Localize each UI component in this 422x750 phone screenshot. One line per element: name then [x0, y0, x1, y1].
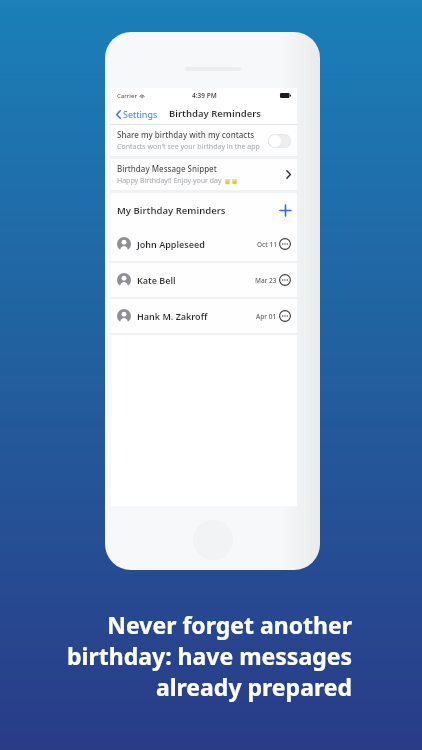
button[interactable]: Hank M. Zakroff	[111, 299, 297, 333]
staticText: Kate Bell	[137, 274, 176, 286]
staticText: already prepared	[155, 671, 352, 702]
button[interactable]: Birthday Message Snippet	[111, 159, 297, 190]
staticText: birthday: have messages	[67, 640, 352, 671]
staticText: Settings	[123, 108, 158, 120]
button[interactable]: Add birthday reminder	[274, 199, 297, 222]
staticText: Never forget another	[107, 609, 352, 640]
staticText: Hank M. Zakroff	[137, 310, 208, 322]
button[interactable]: Kate Bell	[111, 263, 297, 297]
staticText: Carrier	[117, 92, 137, 100]
staticText: Contacts won't see your birthday in the …	[117, 142, 260, 152]
staticText: Oct 11	[257, 240, 277, 249]
staticText: Birthday Message Snippet	[117, 163, 217, 174]
staticText: John Appleseed	[137, 238, 205, 250]
staticText: 4:39 PM	[192, 91, 217, 100]
button[interactable]: John Appleseed	[111, 227, 297, 261]
button[interactable]: More options for Hank M. Zakroff	[279, 310, 291, 322]
staticText: My Birthday Reminders	[117, 204, 226, 217]
button[interactable]: Settings	[111, 105, 162, 123]
staticText: Happy Birthday!! Enjoy your day	[117, 176, 224, 186]
button[interactable]: More options for John Appleseed	[279, 238, 291, 250]
button[interactable]: More options for Kate Bell	[279, 274, 291, 286]
button[interactable]: Share my birthday toggle	[268, 134, 291, 148]
staticText: Mar 23	[255, 276, 277, 285]
staticText: Birthday Reminders	[169, 107, 262, 120]
staticText: Share my birthday with my contacts	[117, 129, 255, 140]
button[interactable]: Share my birthday with my contacts	[111, 125, 297, 156]
staticText: Apr 01	[256, 312, 277, 321]
